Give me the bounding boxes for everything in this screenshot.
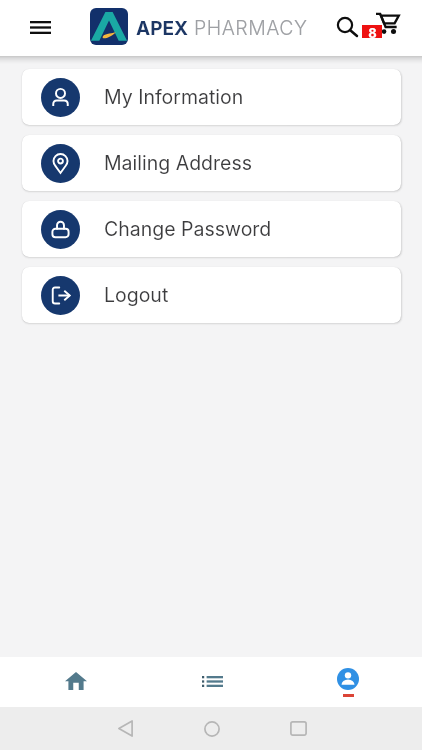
staticText: Logout (104, 283, 169, 307)
button[interactable]: Back (105, 708, 146, 749)
button[interactable]: Logout (22, 267, 401, 323)
button[interactable]: Orders (144, 657, 280, 707)
button[interactable]: Menu (20, 7, 60, 47)
staticText: My Information (104, 85, 244, 109)
button[interactable]: My Information (22, 69, 401, 125)
staticText: APEX (136, 17, 189, 40)
staticText: PHARMACY (194, 16, 308, 40)
staticText: 8 (368, 25, 377, 38)
button[interactable]: Recents (278, 708, 319, 749)
button[interactable]: Home (191, 708, 232, 749)
staticText: Mailing Address (104, 151, 253, 175)
button[interactable]: Search (327, 7, 363, 43)
staticText: Change Password (104, 217, 272, 241)
button[interactable]: Shopping cart (368, 5, 406, 43)
button[interactable]: Mailing Address (22, 135, 401, 191)
button[interactable]: Change Password (22, 201, 401, 257)
button[interactable]: Profile (280, 657, 416, 707)
button[interactable]: Home (8, 657, 144, 707)
